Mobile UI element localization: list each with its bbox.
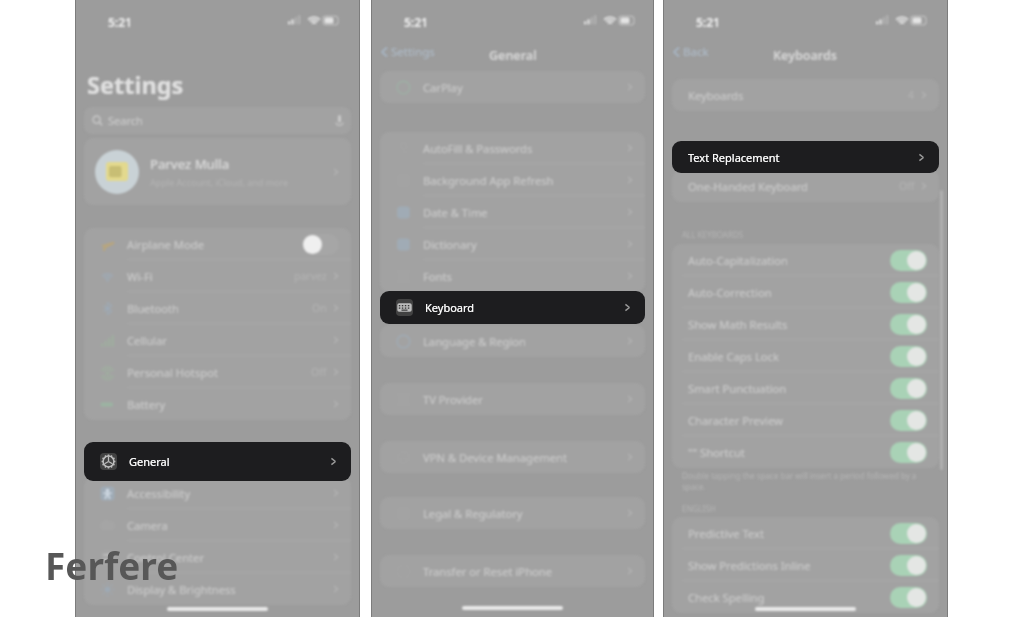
button[interactable]: VPN & Device Management bbox=[380, 441, 645, 473]
button[interactable]: General bbox=[84, 442, 351, 481]
button[interactable]: Auto-Capitalization toggle bbox=[890, 250, 927, 271]
button[interactable]: Language & Region bbox=[380, 325, 645, 357]
button[interactable]: Keyboard bbox=[380, 291, 645, 324]
button[interactable]: Airplane Mode toggle bbox=[302, 234, 339, 255]
staticText: Show Predictions Inline bbox=[688, 558, 811, 573]
staticText: Back bbox=[683, 44, 709, 60]
staticText: Keyboard bbox=[425, 300, 475, 315]
staticText: CarPlay bbox=[423, 80, 463, 95]
staticText: Enable Caps Lock bbox=[688, 349, 779, 364]
staticText: TV Provider bbox=[423, 392, 483, 407]
other: Back bbox=[380, 45, 389, 59]
button[interactable]: Predictive Text toggle bbox=[890, 523, 927, 544]
button[interactable]: One-Handed Keyboard bbox=[672, 170, 939, 202]
button[interactable]: Back bbox=[672, 44, 709, 60]
staticText: ALL KEYBOARDS bbox=[682, 229, 744, 240]
button[interactable]: Auto-Correction bbox=[672, 276, 939, 308]
button[interactable]: Search bbox=[84, 107, 351, 134]
other: Back bbox=[672, 45, 681, 59]
staticText: "" Shortcut bbox=[688, 445, 745, 460]
staticText: Legal & Regulatory bbox=[423, 506, 523, 521]
button[interactable]: Bluetooth bbox=[84, 292, 351, 324]
button[interactable]: Character Preview bbox=[672, 404, 939, 436]
button[interactable]: AutoFill & Passwords bbox=[380, 132, 645, 164]
button[interactable]: Show Predictions Inline bbox=[672, 549, 939, 581]
button[interactable]: Date & Time bbox=[380, 196, 645, 228]
staticText: Predictive Text bbox=[688, 526, 764, 541]
staticText: Cellular bbox=[127, 333, 167, 348]
staticText: Camera bbox=[127, 518, 168, 533]
staticText: Bluetooth bbox=[127, 301, 179, 316]
button[interactable]: Auto-Capitalization bbox=[672, 244, 939, 276]
staticText: Double tapping the space bar will insert… bbox=[682, 470, 929, 492]
staticText: Transfer or Reset iPhone bbox=[423, 564, 553, 579]
staticText: Ferfere bbox=[45, 540, 179, 590]
staticText: Dictionary bbox=[423, 237, 477, 252]
staticText: Keyboards bbox=[773, 47, 838, 64]
staticText: Text Replacement bbox=[688, 150, 780, 165]
button[interactable]: Check Spelling bbox=[672, 581, 939, 613]
button[interactable]: Fonts bbox=[380, 260, 645, 292]
staticText: Language & Region bbox=[423, 334, 527, 349]
button[interactable]: Transfer or Reset iPhone bbox=[380, 555, 645, 587]
staticText: Background App Refresh bbox=[423, 173, 554, 188]
button[interactable]: "" Shortcut toggle bbox=[890, 442, 927, 463]
button[interactable]: Personal Hotspot bbox=[84, 356, 351, 388]
staticText: Parvez Mulla bbox=[150, 155, 230, 173]
staticText: Smart Punctuation bbox=[688, 381, 787, 396]
button[interactable]: Check Spelling toggle bbox=[890, 587, 927, 608]
staticText: Check Spelling bbox=[688, 590, 765, 605]
staticText: Character Preview bbox=[688, 413, 783, 428]
button[interactable]: Enable Caps Lock bbox=[672, 340, 939, 372]
button[interactable]: Dictionary bbox=[380, 228, 645, 260]
button[interactable]: TV Provider bbox=[380, 383, 645, 415]
button[interactable]: Show Predictions Inline toggle bbox=[890, 555, 927, 576]
button[interactable]: Keyboards bbox=[672, 79, 939, 111]
button[interactable]: Character Preview toggle bbox=[890, 410, 927, 431]
staticText: 5:21 bbox=[108, 14, 132, 30]
staticText: Fonts bbox=[423, 269, 452, 284]
staticText: AutoFill & Passwords bbox=[423, 141, 533, 156]
staticText: Auto-Capitalization bbox=[688, 253, 788, 268]
button[interactable]: Enable Caps Lock toggle bbox=[890, 346, 927, 367]
button[interactable]: Show Math Results bbox=[672, 308, 939, 340]
staticText: Airplane Mode bbox=[127, 237, 204, 252]
staticText: General bbox=[489, 47, 537, 64]
button[interactable]: Background App Refresh bbox=[380, 164, 645, 196]
button[interactable]: Smart Punctuation bbox=[672, 372, 939, 404]
button[interactable]: Display & Brightness bbox=[84, 573, 351, 605]
button[interactable]: Parvez Mulla bbox=[84, 138, 351, 205]
button[interactable]: Legal & Regulatory bbox=[380, 497, 645, 529]
button[interactable]: Control Center bbox=[84, 541, 351, 573]
staticText: Date & Time bbox=[423, 205, 488, 220]
staticText: Accessibility bbox=[127, 486, 191, 501]
button[interactable]: Accessibility bbox=[84, 477, 351, 509]
staticText: Search bbox=[108, 113, 143, 128]
button[interactable]: Back bbox=[380, 44, 435, 60]
staticText: Battery bbox=[127, 397, 166, 412]
button[interactable]: Auto-Correction toggle bbox=[890, 282, 927, 303]
staticText: VPN & Device Management bbox=[423, 450, 567, 465]
staticText: Keyboards bbox=[688, 88, 744, 103]
staticText: Personal Hotspot bbox=[127, 365, 218, 380]
staticText: Wi-Fi bbox=[127, 269, 153, 284]
button[interactable]: Airplane Mode bbox=[84, 228, 351, 260]
button[interactable]: "" Shortcut bbox=[672, 436, 939, 468]
button[interactable]: Smart Punctuation toggle bbox=[890, 378, 927, 399]
staticText: 5:21 bbox=[404, 14, 428, 30]
button[interactable]: Text Replacement bbox=[672, 141, 939, 173]
button[interactable]: Show Math Results toggle bbox=[890, 314, 927, 335]
button[interactable]: Predictive Text bbox=[672, 517, 939, 549]
